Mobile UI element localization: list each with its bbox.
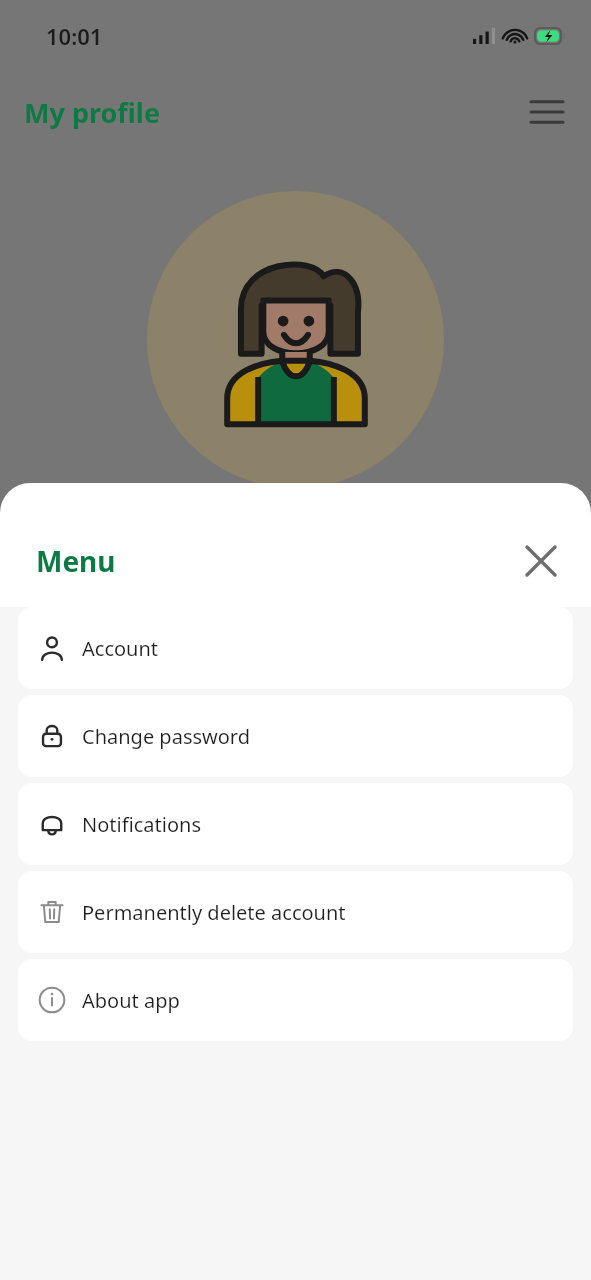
staticText: About app [82,987,180,1014]
button[interactable]: Close [517,537,565,585]
button[interactable]: Account [18,607,573,689]
staticText: Notifications [82,811,201,838]
staticText: Menu [36,542,116,580]
button[interactable]: Permanently delete account [18,871,573,953]
button[interactable]: Open menu [523,88,571,136]
button[interactable]: Notifications [18,783,573,865]
staticText: Change password [82,723,251,750]
staticText: My profile [24,94,161,131]
staticText: 10:01 [46,21,103,51]
staticText: Account [82,635,159,662]
button[interactable]: Change password [18,695,573,777]
staticText: Permanently delete account [82,899,346,926]
button[interactable]: About app [18,959,573,1041]
